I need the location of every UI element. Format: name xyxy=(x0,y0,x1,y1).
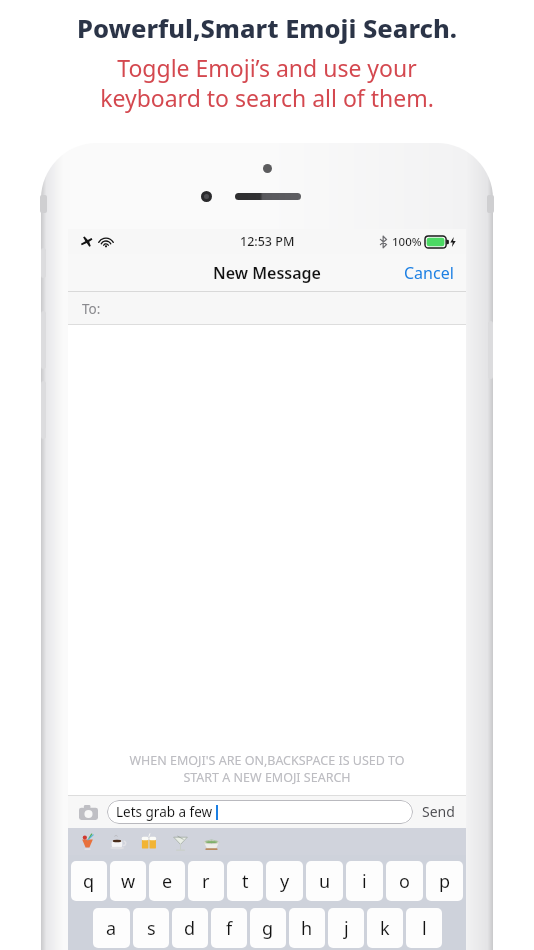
button[interactable]: Camera xyxy=(75,799,101,825)
button[interactable]: u xyxy=(306,861,343,901)
staticText: Lets grab a few xyxy=(116,803,213,821)
button[interactable]: Emoji suggestion xyxy=(167,829,193,855)
staticText: a xyxy=(106,916,117,941)
staticText: e xyxy=(162,869,173,894)
staticText: h xyxy=(301,916,313,941)
staticText: g xyxy=(262,916,274,941)
button[interactable]: p xyxy=(426,861,463,901)
button[interactable]: h xyxy=(289,908,325,948)
staticText: Powerful,Smart Emoji Search. xyxy=(0,11,534,46)
staticText: Cancel xyxy=(404,262,454,284)
staticText: i xyxy=(362,869,367,894)
staticText: Toggle Emoji’s and use your keyboard to … xyxy=(0,52,534,113)
staticText: o xyxy=(399,869,410,894)
button[interactable]: Emoji suggestion xyxy=(105,829,131,855)
staticText: p xyxy=(439,869,451,894)
staticText: 100% xyxy=(392,234,422,250)
button[interactable]: s xyxy=(133,908,169,948)
staticText: u xyxy=(319,869,331,894)
staticText: Send xyxy=(422,802,455,821)
staticText: s xyxy=(147,916,156,941)
staticText: w xyxy=(121,869,136,894)
button[interactable]: d xyxy=(172,908,208,948)
button[interactable]: Emoji suggestion xyxy=(74,829,100,855)
button[interactable]: o xyxy=(386,861,423,901)
button[interactable]: g xyxy=(250,908,286,948)
button[interactable]: a xyxy=(93,908,130,948)
staticText: 12:53 PM xyxy=(240,233,295,250)
staticText: r xyxy=(202,869,210,894)
staticText: q xyxy=(83,869,95,894)
button[interactable]: r xyxy=(188,861,224,901)
button[interactable]: k xyxy=(367,908,403,948)
staticText: j xyxy=(344,916,349,941)
button[interactable]: Send xyxy=(418,798,459,825)
staticText: New Message xyxy=(213,262,321,284)
staticText: k xyxy=(380,916,390,941)
staticText: f xyxy=(226,916,233,941)
button[interactable]: f xyxy=(211,908,247,948)
staticText: y xyxy=(280,869,290,894)
button[interactable]: y xyxy=(266,861,303,901)
staticText: l xyxy=(422,916,427,941)
button[interactable]: q xyxy=(71,861,107,901)
button[interactable]: l xyxy=(406,908,442,948)
button[interactable]: Emoji suggestion xyxy=(136,829,162,855)
staticText: d xyxy=(184,916,196,941)
button[interactable]: t xyxy=(227,861,263,901)
button[interactable]: i xyxy=(346,861,383,901)
button[interactable]: w xyxy=(110,861,146,901)
staticText: t xyxy=(242,869,249,894)
staticText: To: xyxy=(82,300,101,318)
button[interactable]: Cancel xyxy=(392,256,466,290)
button[interactable]: Emoji suggestion xyxy=(198,829,224,855)
button[interactable]: e xyxy=(149,861,185,901)
button[interactable]: To: xyxy=(68,292,466,325)
staticText: WHEN EMOJI'S ARE ON,BACKSPACE IS USED TO… xyxy=(68,752,466,785)
button[interactable]: Lets grab a few xyxy=(107,800,413,824)
button[interactable]: j xyxy=(328,908,364,948)
